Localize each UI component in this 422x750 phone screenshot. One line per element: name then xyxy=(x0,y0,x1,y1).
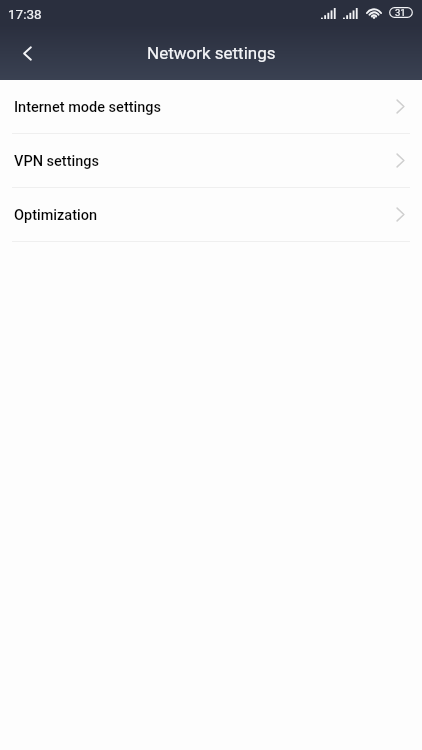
staticText: 31 xyxy=(395,7,406,18)
staticText: Internet mode settings xyxy=(14,99,162,116)
button[interactable]: Optimization xyxy=(0,188,422,241)
staticText: VPN settings xyxy=(14,153,99,170)
button[interactable]: Back xyxy=(0,27,52,79)
staticText: Optimization xyxy=(14,207,98,224)
button[interactable]: Internet mode settings xyxy=(0,80,422,133)
staticText: Network settings xyxy=(147,43,276,63)
button[interactable]: VPN settings xyxy=(0,134,422,187)
staticText: 17:38 xyxy=(8,6,42,22)
